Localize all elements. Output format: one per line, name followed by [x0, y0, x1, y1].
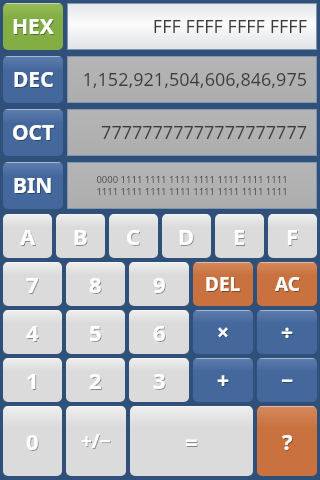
- button[interactable]: 77777777777777777777: [68, 110, 316, 155]
- staticText: 8: [89, 269, 102, 299]
- staticText: 5: [89, 317, 102, 347]
- staticText: C: [127, 222, 142, 252]
- staticText: ?: [282, 426, 293, 456]
- staticText: 3: [153, 365, 166, 395]
- staticText: 6: [154, 318, 167, 348]
- button[interactable]: 4: [3, 310, 62, 354]
- staticText: ÷: [282, 319, 295, 348]
- staticText: OCT: [12, 118, 55, 147]
- button[interactable]: 2: [66, 358, 125, 402]
- button[interactable]: BIN: [3, 162, 63, 209]
- staticText: 9: [154, 270, 167, 300]
- button[interactable]: 6: [129, 310, 189, 354]
- staticText: ×: [218, 319, 231, 348]
- staticText: E: [234, 222, 247, 252]
- staticText: 1: [27, 366, 40, 396]
- button[interactable]: 0: [3, 406, 62, 476]
- staticText: 4: [26, 317, 39, 347]
- staticText: F: [287, 222, 300, 252]
- staticText: =: [186, 427, 199, 457]
- staticText: DEL: [206, 272, 242, 298]
- button[interactable]: C: [109, 214, 158, 258]
- staticText: 4: [27, 318, 40, 348]
- staticText: A: [20, 221, 36, 251]
- button[interactable]: 8: [66, 262, 125, 306]
- staticText: FFF FFFF FFFF FFFF: [152, 14, 307, 39]
- button[interactable]: B: [56, 214, 105, 258]
- staticText: ×: [217, 318, 230, 347]
- button[interactable]: Plus: [193, 358, 253, 402]
- staticText: B: [73, 221, 88, 251]
- button[interactable]: 1: [3, 358, 62, 402]
- button[interactable]: FFF FFFF FFFF FFFF: [68, 4, 316, 49]
- staticText: AC: [276, 272, 301, 298]
- staticText: =: [185, 426, 198, 456]
- staticText: BIN: [13, 171, 53, 200]
- button[interactable]: Multiply: [193, 310, 253, 354]
- button[interactable]: DEC: [3, 56, 63, 103]
- staticText: OCT: [13, 119, 56, 148]
- staticText: 7: [26, 269, 39, 299]
- staticText: 3: [154, 366, 167, 396]
- staticText: A: [21, 222, 37, 252]
- button[interactable]: 9: [129, 262, 189, 306]
- button[interactable]: F: [268, 214, 317, 258]
- button[interactable]: 0000 1111 1111 1111 1111 1111 1111 1111 …: [68, 163, 316, 208]
- button[interactable]: ?: [257, 406, 317, 476]
- staticText: AC: [275, 271, 300, 297]
- staticText: B: [74, 222, 89, 252]
- button[interactable]: Divide: [257, 310, 317, 354]
- staticText: ÷: [281, 318, 294, 347]
- staticText: E: [233, 221, 246, 251]
- staticText: 5: [90, 318, 103, 348]
- staticText: +: [217, 366, 230, 395]
- staticText: DEL: [205, 271, 241, 297]
- staticText: +: [218, 367, 231, 396]
- staticText: 1: [26, 365, 39, 395]
- staticText: D: [178, 221, 195, 251]
- staticText: 9: [153, 269, 166, 299]
- staticText: 7: [27, 270, 40, 300]
- staticText: +/−: [82, 429, 112, 455]
- button[interactable]: Minus: [257, 358, 317, 402]
- button[interactable]: 1,152,921,504,606,846,975: [68, 57, 316, 102]
- staticText: DEC: [13, 65, 54, 94]
- button[interactable]: AC: [257, 262, 317, 306]
- button[interactable]: DEL: [193, 262, 253, 306]
- staticText: 6: [153, 317, 166, 347]
- button[interactable]: 3: [129, 358, 189, 402]
- staticText: +/−: [81, 428, 111, 454]
- staticText: HEX: [13, 13, 55, 42]
- button[interactable]: +/−: [66, 406, 126, 476]
- staticText: D: [179, 222, 196, 252]
- button[interactable]: D: [162, 214, 211, 258]
- staticText: 0000 1111 1111 1111 1111 1111 1111 1111 …: [96, 173, 288, 198]
- staticText: ?: [283, 427, 294, 457]
- button[interactable]: 7: [3, 262, 62, 306]
- button[interactable]: E: [215, 214, 264, 258]
- staticText: HEX: [12, 12, 54, 41]
- staticText: 8: [90, 270, 103, 300]
- staticText: 2: [89, 365, 102, 395]
- staticText: 77777777777777777777: [101, 120, 307, 145]
- staticText: F: [286, 221, 299, 251]
- button[interactable]: A: [3, 214, 52, 258]
- staticText: −: [281, 366, 294, 395]
- staticText: −: [282, 367, 295, 396]
- button[interactable]: HEX: [3, 3, 63, 50]
- staticText: DEC: [14, 66, 55, 95]
- staticText: 1,152,921,504,606,846,975: [82, 67, 307, 92]
- button[interactable]: OCT: [3, 109, 63, 156]
- staticText: BIN: [14, 172, 54, 201]
- staticText: 0: [26, 426, 39, 456]
- button[interactable]: =: [130, 406, 253, 476]
- button[interactable]: 5: [66, 310, 125, 354]
- staticText: C: [126, 221, 141, 251]
- staticText: 2: [90, 366, 103, 396]
- staticText: 0: [27, 427, 40, 457]
